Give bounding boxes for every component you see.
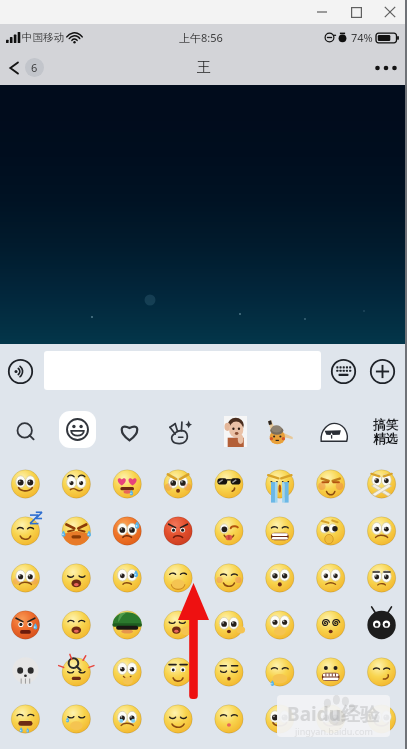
button[interactable]: Maximize	[339, 0, 373, 24]
staticText: jingyan.baidu.com	[295, 725, 373, 737]
staticText: 74%	[351, 30, 373, 45]
button[interactable]: Favourites	[111, 405, 147, 458]
button[interactable]: Sticker pack, child	[217, 405, 253, 458]
staticText: 搞笑 精选	[373, 417, 398, 447]
staticText: 上午8:56	[179, 30, 223, 45]
button[interactable]: Search	[8, 405, 44, 458]
button[interactable]: Sticker pack, cool face	[316, 405, 352, 458]
staticText: 中国移动	[22, 31, 64, 44]
button[interactable]: Keyboard	[327, 355, 359, 387]
staticText: 王	[197, 59, 211, 77]
button[interactable]: 搞笑 精选	[364, 405, 407, 458]
button[interactable]: Voice message	[4, 355, 36, 387]
button[interactable]: Emoji	[59, 411, 96, 448]
staticText: Baidu经验	[287, 701, 380, 727]
staticText: 6	[31, 60, 38, 75]
button[interactable]: More options	[365, 50, 407, 85]
button[interactable]: Sticker pack, pikachu	[260, 405, 296, 458]
button[interactable]: Close	[373, 0, 407, 24]
button[interactable]: Back, 6 unread	[7, 50, 44, 85]
button[interactable]: Gestures	[162, 405, 198, 458]
button[interactable]: Add attachment	[366, 355, 398, 387]
button[interactable]: Minimize	[305, 0, 339, 24]
